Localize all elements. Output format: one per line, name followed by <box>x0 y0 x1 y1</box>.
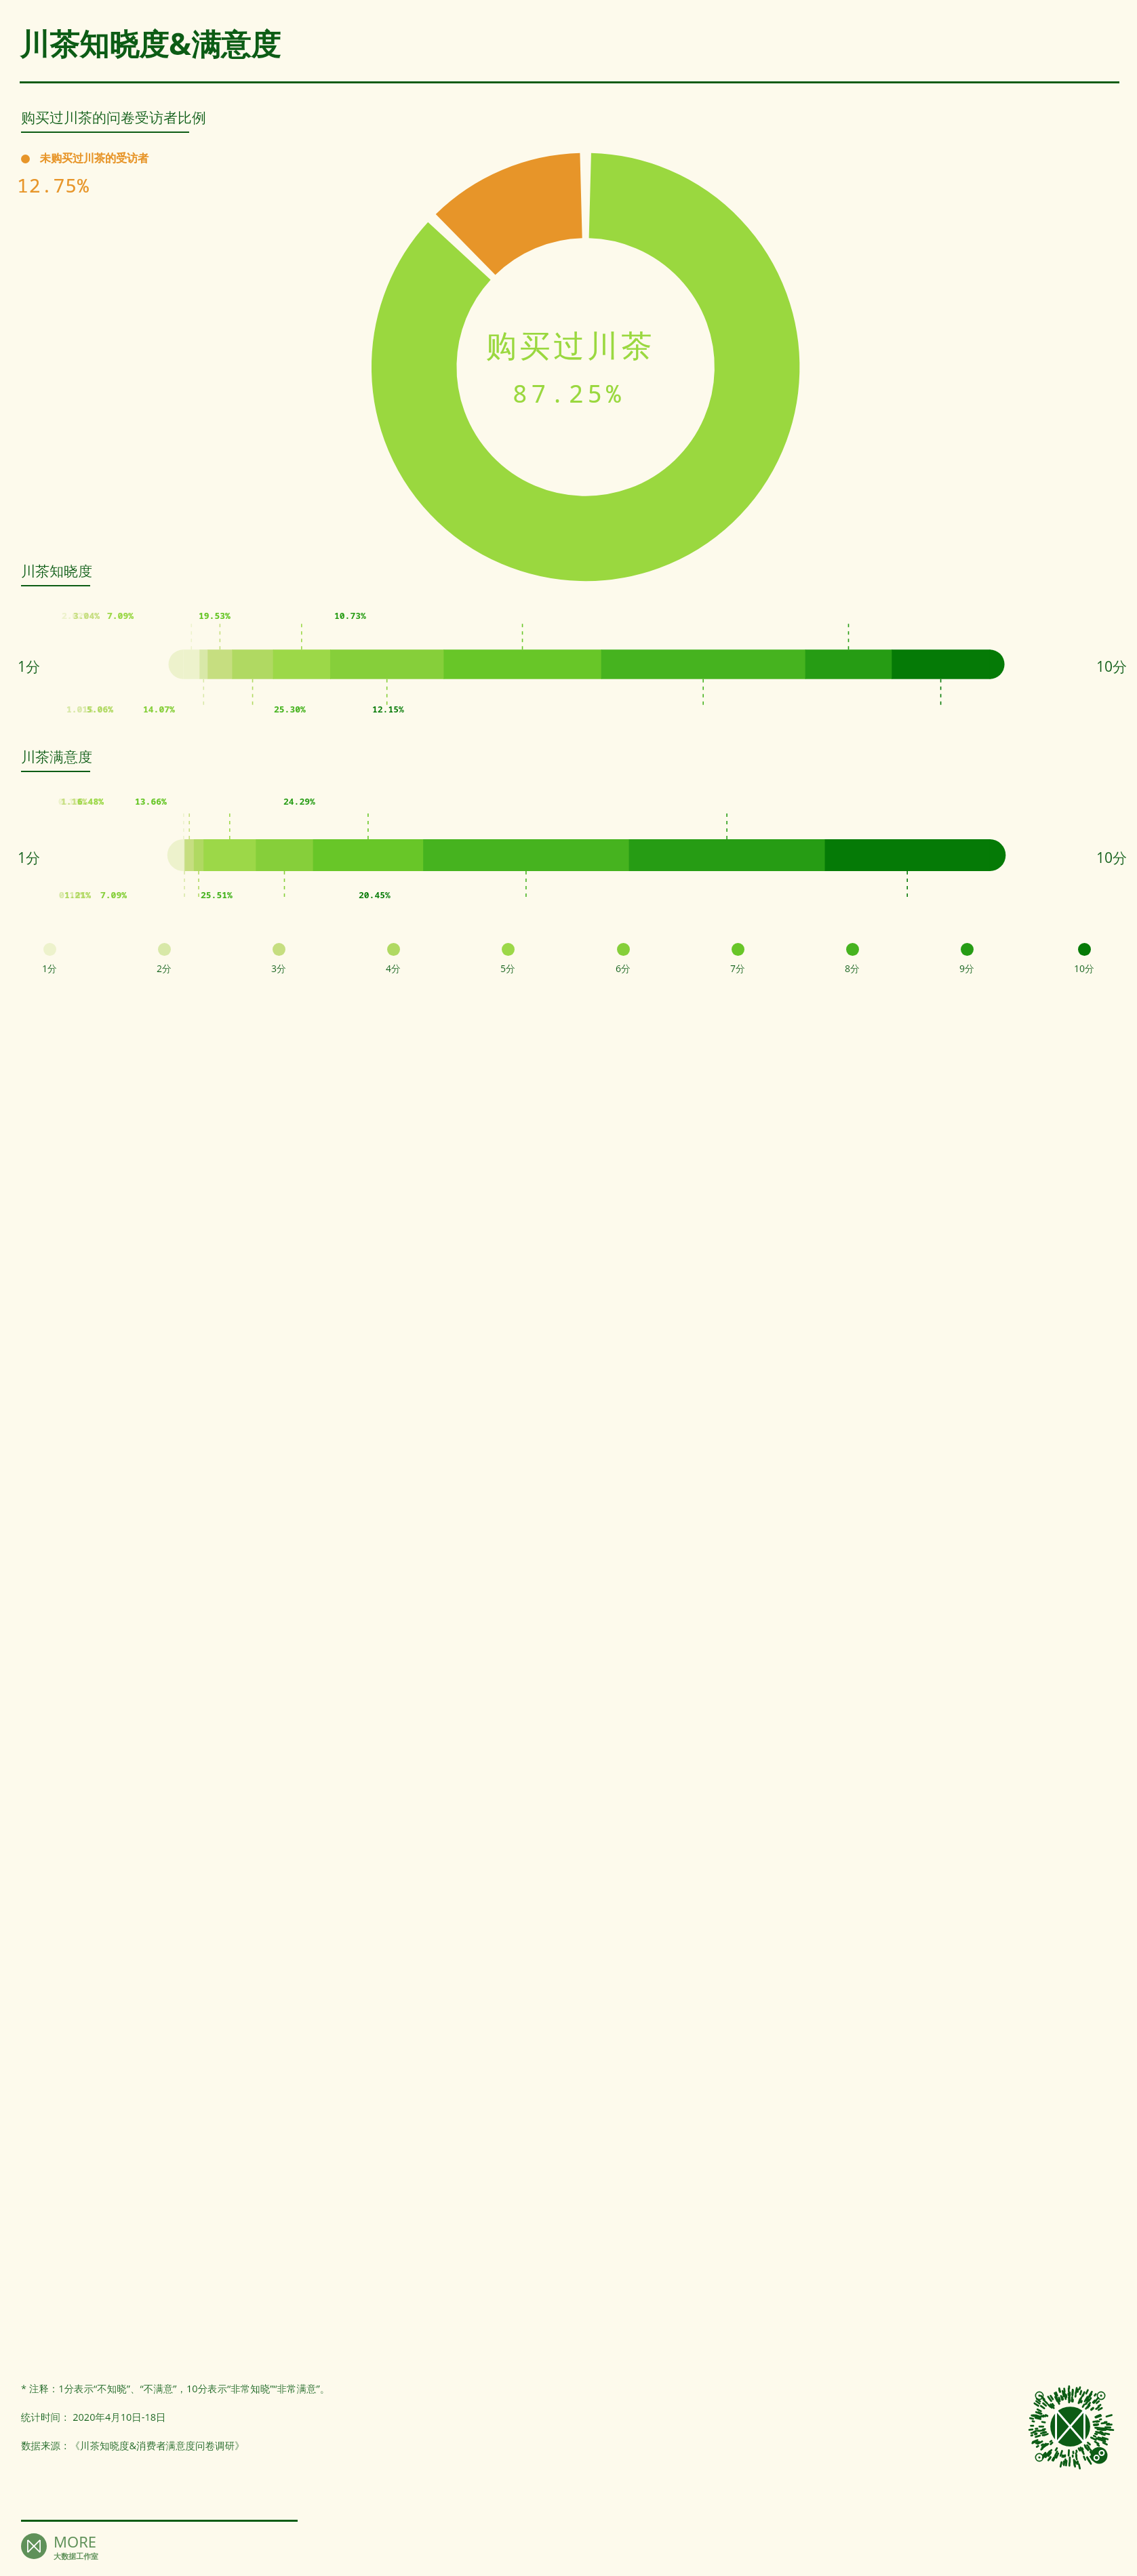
button[interactable]: 8分 <box>845 943 860 975</box>
button[interactable]: 川茶知晓度 <box>21 563 92 586</box>
staticText: * 注释：1分表示“不知晓”、“不满意”，10分表示“非常知晓”“非常满意”。 <box>21 2381 330 2395</box>
staticText: 1.21% <box>64 889 92 901</box>
button[interactable]: 7分 <box>730 943 746 975</box>
staticText: 20.45% <box>359 889 391 901</box>
button[interactable]: 川茶满意度 <box>21 748 92 772</box>
staticText: 10分 <box>1074 962 1095 975</box>
button[interactable]: 4分 <box>386 943 401 975</box>
button[interactable]: 6分 <box>616 943 631 975</box>
staticText: 12.15% <box>372 703 404 715</box>
staticText: 川茶知晓度 <box>21 563 92 580</box>
staticText: 6.48% <box>77 795 104 807</box>
staticText: 0.10% <box>59 889 86 901</box>
staticText: 1分 <box>42 962 58 975</box>
staticText: 10.73% <box>334 609 366 622</box>
staticText: 5分 <box>500 962 516 975</box>
staticText: 9分 <box>959 962 975 975</box>
staticText: 10分 <box>1096 848 1128 868</box>
staticText: 25.51% <box>201 889 233 901</box>
staticText: 3.04% <box>73 609 100 622</box>
staticText: 7.09% <box>107 609 134 622</box>
staticText: 川茶满意度 <box>21 748 92 766</box>
button[interactable]: 购买过川茶的问卷受访者比例 <box>21 109 206 133</box>
staticText: 7.09% <box>100 889 127 901</box>
staticText: 1分 <box>18 848 41 868</box>
staticText: 13.66% <box>135 795 167 807</box>
other: 小程序二维码 <box>1028 2384 1113 2469</box>
staticText: 8分 <box>845 962 860 975</box>
button[interactable]: 5分 <box>500 943 516 975</box>
staticText: 7分 <box>730 962 746 975</box>
button[interactable]: 3分 <box>271 943 287 975</box>
staticText: 1.01% <box>66 703 94 715</box>
staticText: 购买过川茶 <box>484 327 654 366</box>
staticText: 12.75% <box>17 172 89 198</box>
staticText: 1.11% <box>61 795 88 807</box>
button[interactable]: 1分 <box>42 943 58 975</box>
staticText: 1分 <box>18 657 41 677</box>
staticText: 3分 <box>271 962 287 975</box>
staticText: 24.29% <box>283 795 315 807</box>
staticText: 川茶知晓度&满意度 <box>20 23 281 64</box>
staticText: 数据来源：《川茶知晓度&消费者满意度问卷调研》 <box>21 2438 245 2452</box>
button[interactable]: 9分 <box>959 943 975 975</box>
button[interactable]: 10分 <box>1074 943 1095 975</box>
staticText: 0.10% <box>58 795 85 807</box>
staticText: 2.02% <box>62 609 89 622</box>
staticText: MORE <box>54 2531 97 2552</box>
staticText: 4分 <box>386 962 401 975</box>
staticText: 6分 <box>616 962 631 975</box>
button[interactable]: MORE <box>21 2531 98 2561</box>
staticText: 25.30% <box>274 703 306 715</box>
staticText: 未购买过川茶的受访者 <box>40 152 148 165</box>
staticText: 14.07% <box>143 703 175 715</box>
staticText: 87.25% <box>513 377 625 410</box>
staticText: 19.53% <box>199 609 231 622</box>
staticText: 大数据工作室 <box>54 2552 98 2561</box>
staticText: 2分 <box>157 962 172 975</box>
other: 购买过川茶 87.25% <box>0 165 1137 542</box>
staticText: 购买过川茶的问卷受访者比例 <box>21 109 206 127</box>
staticText: 5.06% <box>87 703 114 715</box>
staticText: 统计时间： 2020年4月10日-18日 <box>21 2410 166 2423</box>
button[interactable]: 未购买过川茶的受访者 <box>21 152 148 165</box>
button[interactable]: 2分 <box>157 943 172 975</box>
staticText: 10分 <box>1096 657 1128 677</box>
